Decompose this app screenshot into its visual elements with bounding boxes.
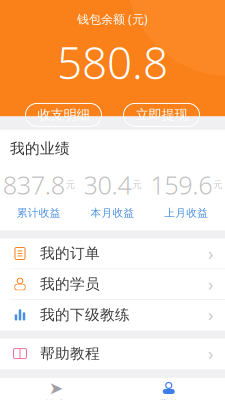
staticText: 我的学员 [40,275,100,293]
staticText: › [208,342,213,365]
staticText: 立即提现 [135,107,187,123]
staticText: 837.8 [3,168,65,201]
staticText: › [208,273,213,296]
button[interactable]: ➤ [0,377,112,400]
staticText: 我的 [158,398,180,400]
staticText: 累计收益 [17,206,61,219]
staticText: 我的订单 [40,244,100,262]
button[interactable]: 帮助教程 [0,339,225,369]
button[interactable]: 我的订单 [0,238,225,269]
staticText: ➤ [49,378,64,398]
staticText: 30.4 [83,168,131,201]
staticText: 本月收益 [90,206,134,219]
staticText: 元 [66,179,75,190]
staticText: 帮助教程 [40,345,100,363]
staticText: 收支明细 [37,107,89,123]
staticText: 钱包余额 (元) [77,11,148,27]
staticText: 我的业绩 [10,140,70,158]
staticText: › [208,242,213,265]
staticText: 元 [132,179,141,190]
staticText: 上月收益 [164,206,208,219]
staticText: 我的下级教练 [40,306,130,324]
staticText: › [208,303,213,326]
button[interactable]: 我的下级教练 [0,300,225,331]
staticText: 159.6 [150,168,212,201]
button[interactable]: 我的学员 [0,269,225,300]
staticText: 元 [213,179,222,190]
button[interactable]: 我的 [112,377,225,400]
staticText: 推广 [45,398,67,400]
staticText: 580.8 [57,33,168,91]
button[interactable]: 收支明细 [25,103,101,126]
button[interactable]: 立即提现 [123,103,199,126]
